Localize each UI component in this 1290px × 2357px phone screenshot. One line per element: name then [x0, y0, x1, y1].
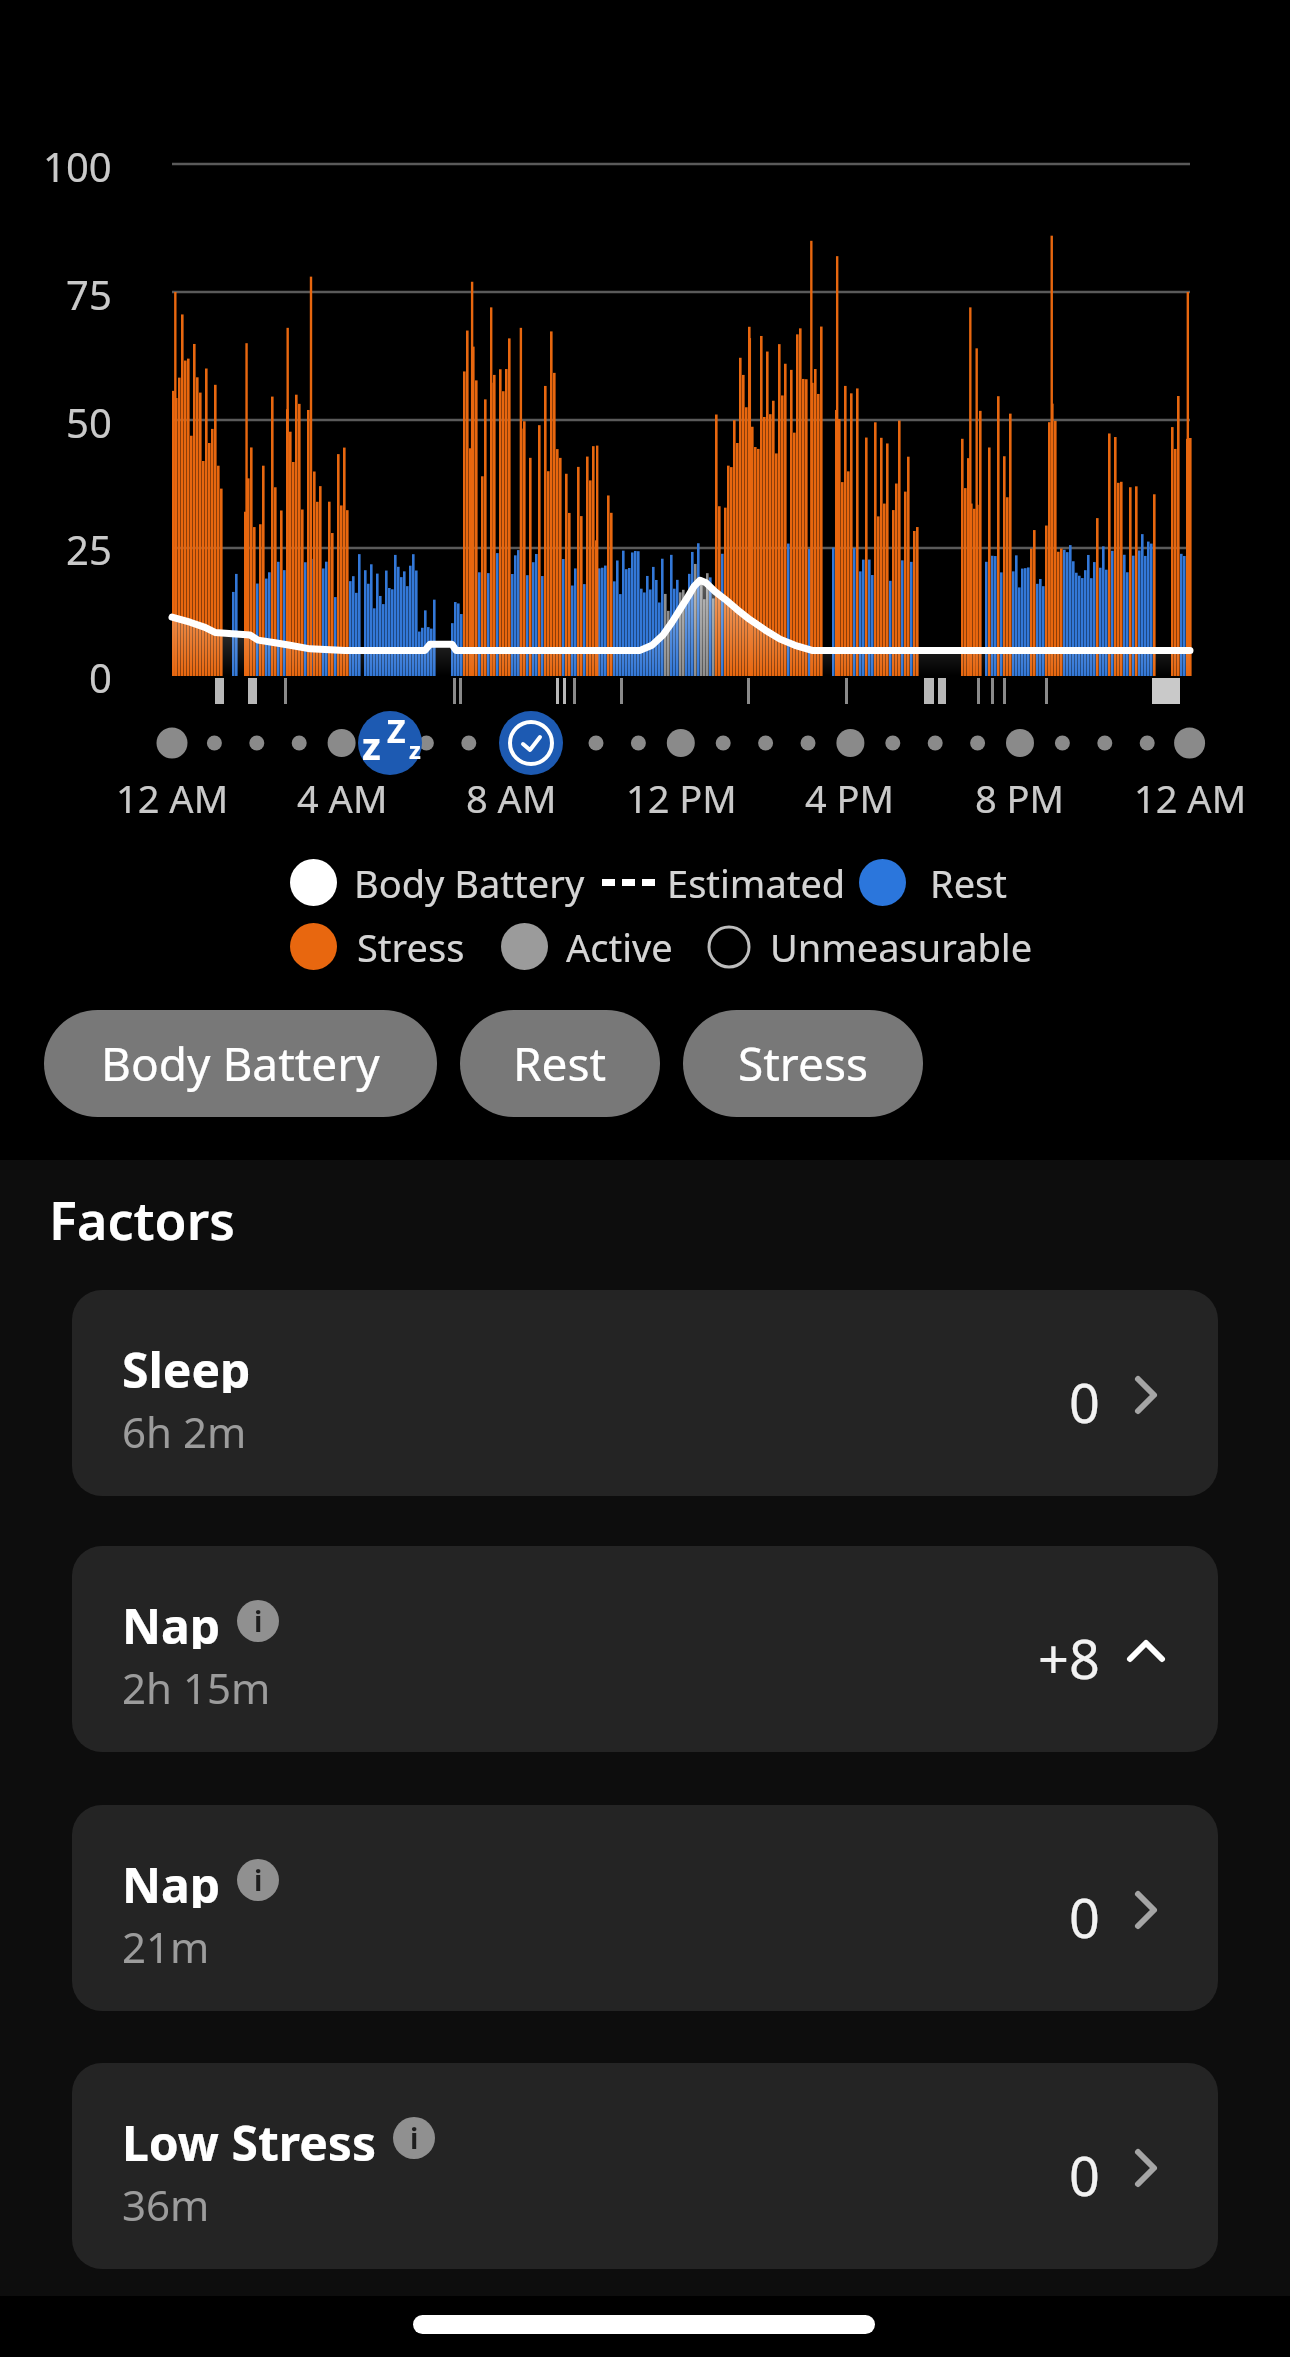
staticText: Estimated	[667, 857, 846, 909]
staticText: 12 PM	[626, 772, 737, 822]
staticText: 4 AM	[297, 772, 388, 822]
staticText: 0	[1069, 1880, 1100, 1940]
button[interactable]: Low Stress	[72, 2063, 1218, 2269]
button[interactable]: Stress	[683, 1010, 923, 1117]
staticText: Sleep	[122, 1337, 251, 1393]
staticText: Unmeasurable	[770, 921, 1033, 973]
staticText: z	[409, 733, 421, 766]
staticText: z	[362, 719, 381, 771]
staticText: Body Battery	[354, 857, 585, 909]
staticText: Body Battery	[101, 1032, 380, 1095]
staticText: i	[254, 1861, 263, 1899]
staticText: Nap	[122, 1852, 221, 1908]
staticText: 2h 15m	[122, 1659, 271, 1709]
staticText: 75	[66, 267, 112, 319]
staticText: Active	[566, 921, 673, 973]
staticText: 21m	[122, 1918, 210, 1968]
button[interactable]: Nap	[72, 1546, 1218, 1752]
staticText: 4 PM	[805, 772, 895, 822]
button[interactable]: Body Battery	[44, 1010, 437, 1117]
staticText: Rest	[930, 857, 1007, 909]
button[interactable]: Nap	[72, 1805, 1218, 2011]
staticText: 12 AM	[116, 772, 229, 822]
staticText: 12 AM	[1134, 772, 1247, 822]
staticText: Nap	[122, 1593, 221, 1649]
staticText: Stress	[738, 1032, 868, 1095]
staticText: Stress	[357, 921, 465, 973]
button[interactable]: Rest	[460, 1010, 660, 1117]
staticText: 0	[1069, 2138, 1100, 2198]
button[interactable]: Sleep	[72, 1290, 1218, 1496]
staticText: Low Stress	[122, 2110, 377, 2166]
staticText: 0	[89, 650, 112, 702]
staticText: 100	[43, 139, 112, 191]
staticText: 25	[66, 522, 112, 574]
staticText: 8 AM	[466, 772, 557, 822]
staticText: Rest	[513, 1032, 607, 1095]
staticText: Factors	[49, 1184, 235, 1255]
staticText: i	[254, 1602, 263, 1640]
staticText: i	[410, 2119, 419, 2157]
staticText: 50	[66, 395, 112, 447]
staticText: 36m	[122, 2176, 210, 2226]
staticText: 8 PM	[975, 772, 1065, 822]
staticText: Z	[387, 709, 406, 753]
staticText: 6h 2m	[122, 1403, 247, 1453]
staticText: +8	[1038, 1621, 1100, 1681]
staticText: 0	[1069, 1365, 1100, 1425]
